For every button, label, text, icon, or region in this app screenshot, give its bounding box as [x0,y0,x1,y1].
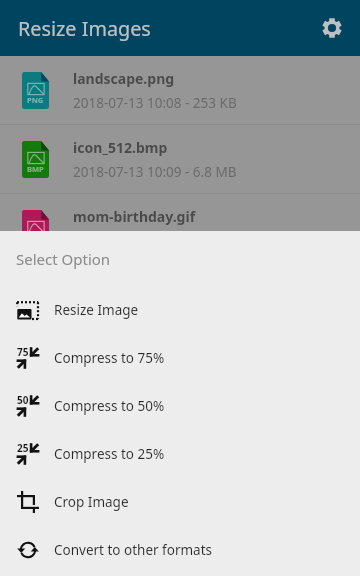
staticText: Compress to 50% [54,397,165,415]
staticText: Resize Image [54,301,139,319]
staticText: icon_512.bmp [73,138,168,157]
button[interactable]: GIF [0,194,360,262]
button[interactable]: Settings [304,0,360,56]
staticText: Convert to other formats [54,541,213,559]
staticText: Select Option [16,249,111,269]
staticText: 50 [17,393,29,407]
staticText: Compress to 25% [54,445,165,463]
staticText: 2018-07-13 10:09 - 6.8 MB [73,163,237,181]
staticText: Crop Image [54,493,129,511]
staticText: Compress to 75% [54,349,165,367]
button[interactable]: 50 [0,382,360,430]
button[interactable]: Crop Image [0,478,360,526]
button[interactable]: 75 [0,334,360,382]
button[interactable]: Convert to other formats [0,526,360,574]
staticText: BMP [27,164,44,174]
staticText: 25 [17,441,29,455]
staticText: 2018-07-13 10:08 - 253 KB [73,94,237,112]
staticText: 75 [17,345,29,359]
staticText: landscape.png [73,69,175,88]
button[interactable]: PNG [0,56,360,124]
staticText: mom-birthday.gif [73,207,196,226]
button[interactable]: BMP [0,125,360,193]
button[interactable]: Resize Image [0,286,360,334]
button[interactable]: 25 [0,430,360,478]
staticText: Resize Images [18,15,151,42]
staticText: PNG [27,95,44,105]
